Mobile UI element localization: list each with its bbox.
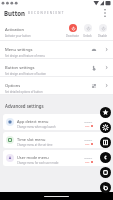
staticText: Time slot menu xyxy=(17,137,46,142)
staticText: Options xyxy=(5,83,21,89)
button[interactable]: Back xyxy=(100,152,111,163)
button[interactable]: Settings xyxy=(100,122,111,133)
staticText: Set detailed options of button xyxy=(5,90,43,94)
button[interactable]: Button settings xyxy=(0,59,113,76)
staticText: Change menu when app launch xyxy=(17,125,56,129)
staticText: Button settings xyxy=(5,65,35,71)
button[interactable]: Menu settings xyxy=(0,41,113,58)
button[interactable]: Unlock xyxy=(80,21,95,38)
staticText: App detect menu xyxy=(17,119,49,124)
staticText: Activation xyxy=(5,27,25,33)
staticText: Activate your button xyxy=(5,34,31,38)
staticText: Unlock xyxy=(83,34,92,38)
staticText: OFF xyxy=(85,124,90,127)
staticText: Set design and feature of menu xyxy=(5,54,45,58)
button[interactable]: Time slot menu xyxy=(3,132,110,148)
button[interactable]: User mode menu xyxy=(3,150,110,166)
button[interactable]: Activation xyxy=(0,19,113,40)
button[interactable]: Favorite xyxy=(100,107,111,118)
button[interactable]: Recents xyxy=(100,182,111,193)
staticText: OFF xyxy=(85,142,90,145)
staticText: OFF xyxy=(85,160,90,163)
staticText: BECONVENIENT xyxy=(28,11,65,15)
button[interactable]: Apps xyxy=(100,137,111,148)
button[interactable]: Options xyxy=(0,77,113,94)
staticText: Set design and feature of button xyxy=(5,72,46,76)
button[interactable]: More options xyxy=(99,7,111,19)
button[interactable]: App detect menu xyxy=(3,114,110,130)
staticText: Change menu at the set time xyxy=(17,143,53,147)
staticText: Always xyxy=(84,138,93,141)
button[interactable]: Deactivate xyxy=(65,21,80,38)
button[interactable]: Home xyxy=(100,167,111,178)
button[interactable]: Disable xyxy=(95,21,110,38)
staticText: Always xyxy=(84,156,93,159)
staticText: Disable xyxy=(98,34,107,38)
staticText: Deactivate xyxy=(66,34,79,38)
staticText: Always xyxy=(84,120,93,123)
staticText: Change menu for each user mode xyxy=(17,161,59,165)
staticText: Menu settings xyxy=(5,47,33,53)
staticText: User mode menu xyxy=(17,155,49,160)
staticText: Advanced settings xyxy=(5,103,44,109)
staticText: Button xyxy=(4,9,26,17)
